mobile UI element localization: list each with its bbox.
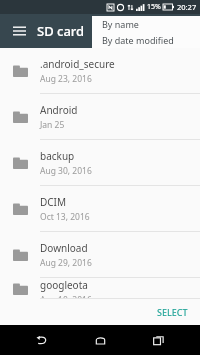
staticText: Android (40, 103, 78, 117)
button[interactable]: DCIM (0, 186, 200, 232)
staticText: 20:27 (177, 2, 197, 12)
staticText: SD card (37, 22, 85, 40)
staticText: Aug 10, 2016 (40, 294, 92, 299)
button[interactable]: By name (92, 16, 200, 32)
staticText: Jan 25 (40, 119, 65, 131)
staticText: Aug 23, 2016 (40, 73, 92, 85)
staticText: Oct 13, 2016 (40, 211, 90, 223)
button[interactable]: By date modified (92, 32, 200, 48)
button[interactable]: Download (0, 232, 200, 278)
staticText: SELECT (157, 306, 188, 318)
staticText: DCIM (40, 195, 67, 209)
button[interactable]: backup (0, 140, 200, 186)
button[interactable]: Open navigation drawer (8, 20, 30, 42)
staticText: googleota (40, 278, 88, 292)
button[interactable]: googleota (0, 278, 200, 299)
staticText: Download (40, 241, 88, 255)
button[interactable]: Home (84, 325, 116, 355)
staticText: backup (40, 149, 75, 163)
button[interactable]: Recent apps (142, 325, 174, 355)
staticText: 15% (147, 2, 161, 12)
button[interactable]: .android_secure (0, 48, 200, 94)
staticText: By name (102, 18, 139, 30)
staticText: .android_secure (40, 57, 115, 71)
staticText: By date modified (102, 34, 174, 46)
button[interactable]: Android (0, 94, 200, 140)
staticText: Aug 29, 2016 (40, 257, 92, 269)
staticText: Aug 30, 2016 (40, 165, 92, 177)
button[interactable]: SELECT (151, 302, 194, 322)
button[interactable]: Back (26, 325, 58, 355)
